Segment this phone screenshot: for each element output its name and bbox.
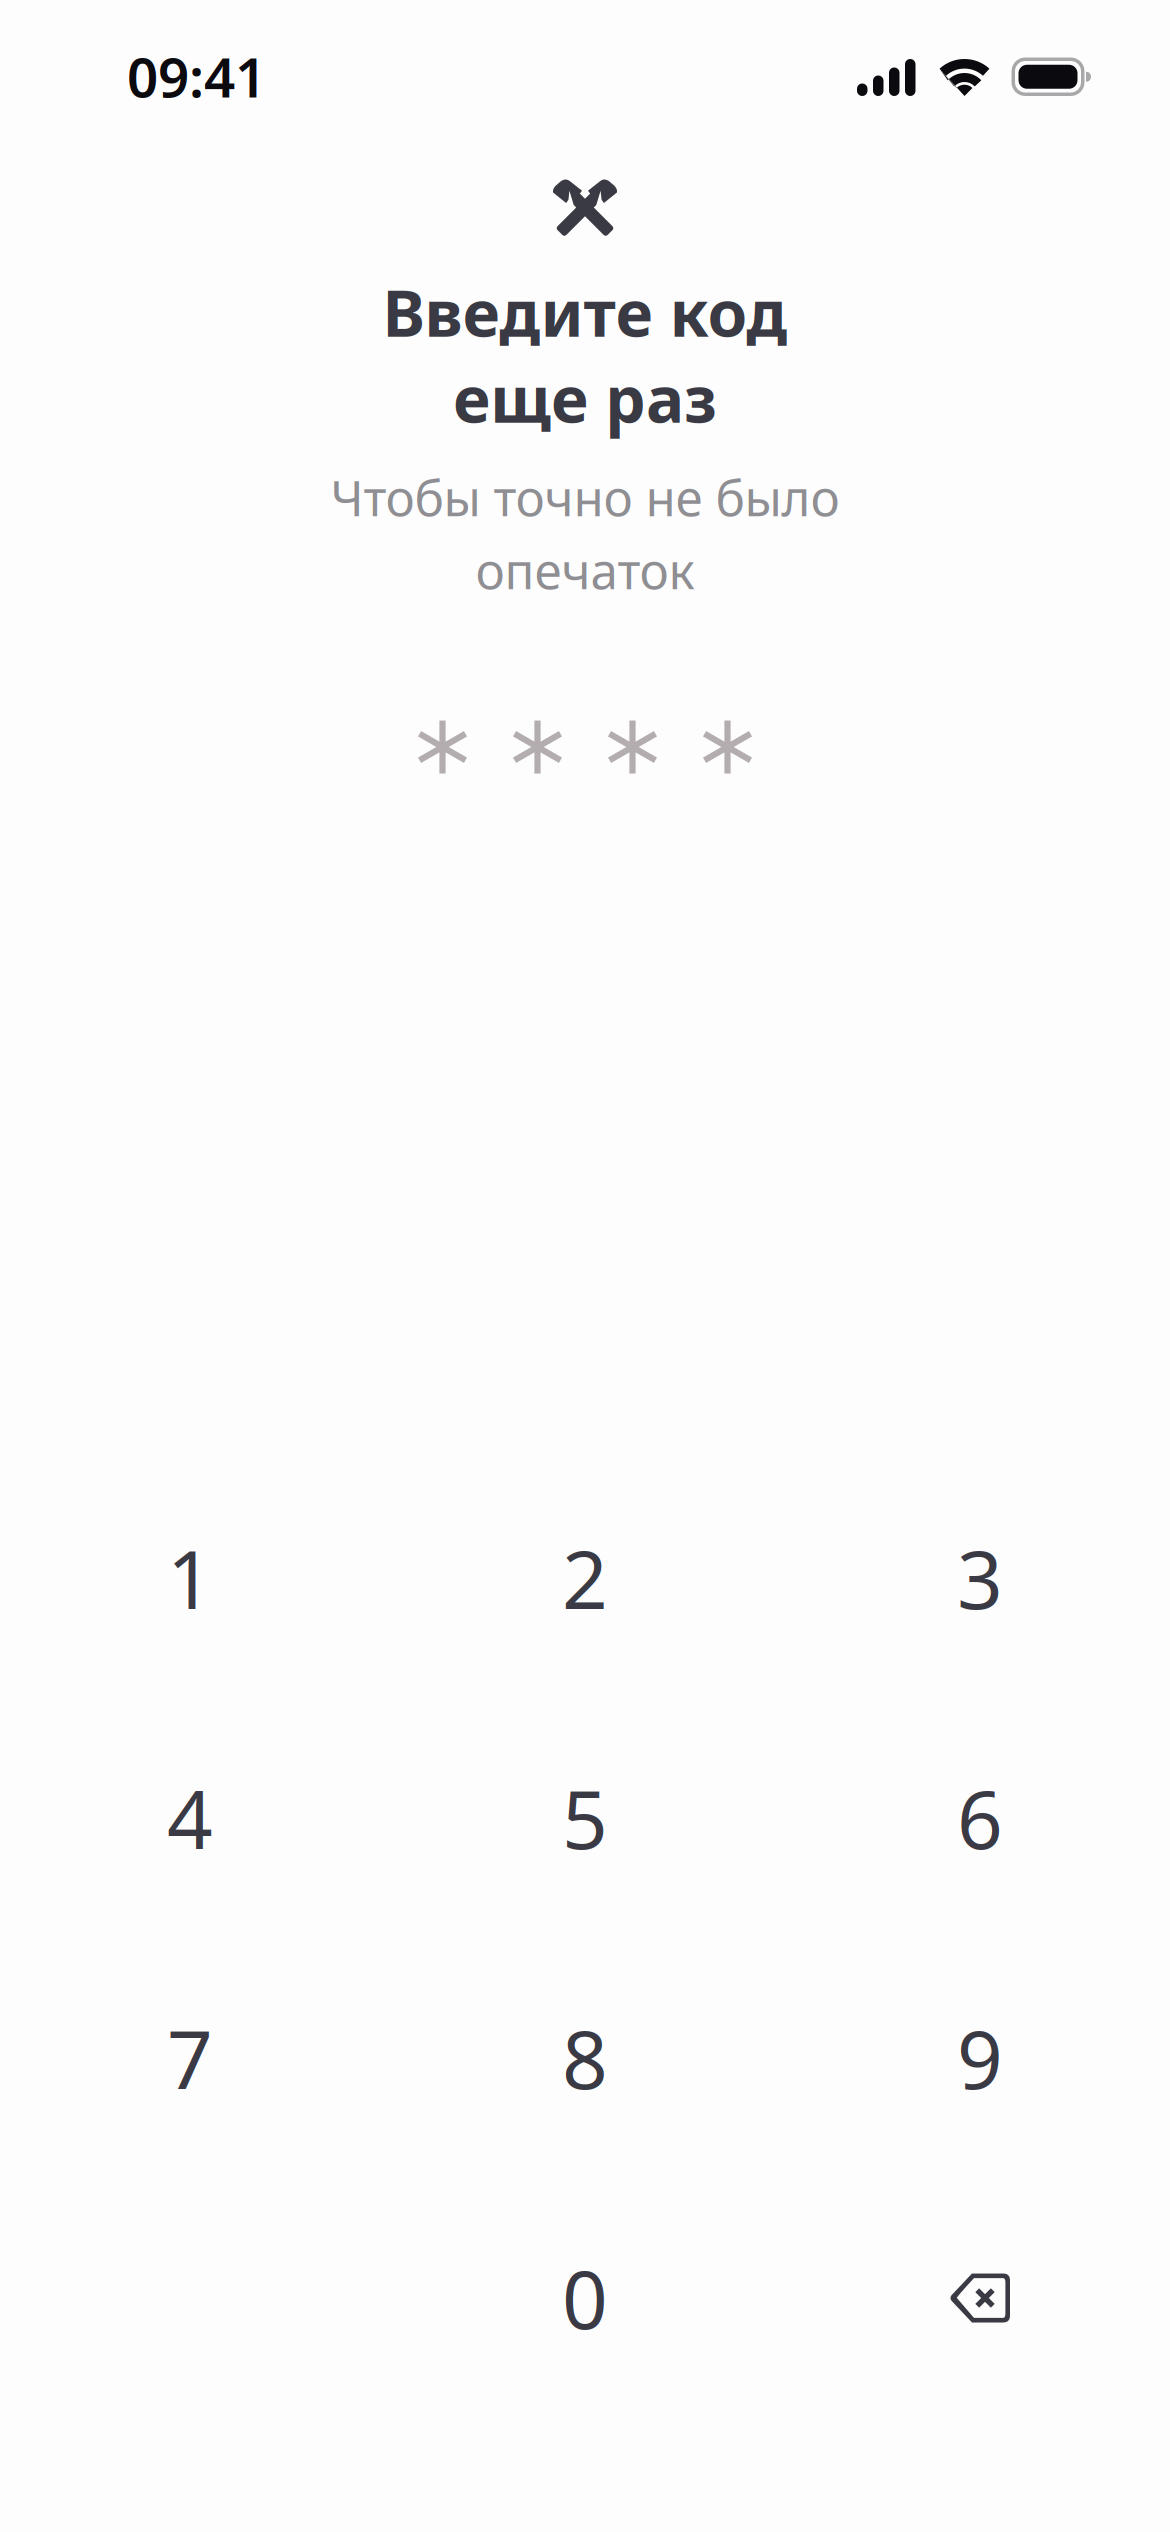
button[interactable]: 1	[0, 1458, 379, 1698]
staticText: еще раз	[453, 355, 717, 440]
button[interactable]: 5	[395, 1698, 774, 1938]
staticText: Введите код	[382, 269, 787, 354]
staticText: 9	[957, 2005, 1003, 2111]
staticText: 4	[167, 1765, 213, 1871]
button[interactable]: Delete	[790, 2178, 1169, 2418]
button[interactable]: 4	[0, 1698, 379, 1938]
button[interactable]: 3	[790, 1458, 1169, 1698]
staticText: 0	[562, 2245, 608, 2351]
staticText: 8	[562, 2005, 608, 2111]
button[interactable]: 6	[790, 1698, 1169, 1938]
staticText: Чтобы точно не было	[330, 464, 839, 530]
staticText: 1	[167, 1525, 213, 1631]
staticText: 6	[957, 1765, 1003, 1871]
staticText: опечаток	[475, 537, 694, 603]
staticText: 09:41	[127, 40, 266, 113]
button[interactable]: 7	[0, 1938, 379, 2178]
staticText: 7	[167, 2005, 213, 2111]
button[interactable]: 9	[790, 1938, 1169, 2178]
staticText: 2	[562, 1525, 608, 1631]
button[interactable]: 0	[395, 2178, 774, 2418]
staticText: 5	[562, 1765, 608, 1871]
staticText: 3	[957, 1525, 1003, 1631]
button[interactable]: 2	[395, 1458, 774, 1698]
button[interactable]: 8	[395, 1938, 774, 2178]
